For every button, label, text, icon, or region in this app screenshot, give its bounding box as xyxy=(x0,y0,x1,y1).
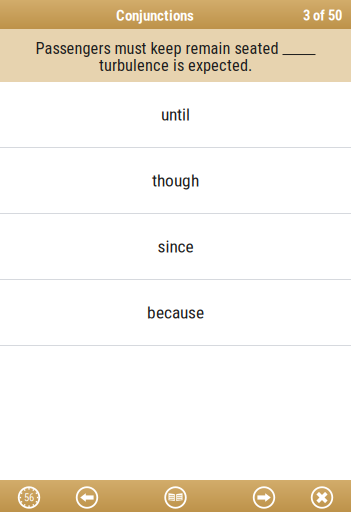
staticText: 3 of 50 xyxy=(303,7,342,24)
staticText: Conjunctions xyxy=(116,7,194,24)
button[interactable]: though xyxy=(0,148,351,213)
staticText: turbulence is expected. xyxy=(99,56,252,75)
staticText: until xyxy=(161,104,190,125)
staticText: though xyxy=(152,170,199,191)
button[interactable]: because xyxy=(0,280,351,345)
button[interactable]: Close quiz xyxy=(309,484,335,510)
button[interactable]: Next question xyxy=(251,484,277,510)
button[interactable]: Previous question xyxy=(74,484,100,510)
button[interactable]: until xyxy=(0,82,351,147)
staticText: because xyxy=(147,302,204,323)
staticText: since xyxy=(157,236,193,257)
button[interactable]: Dictionary xyxy=(162,484,188,510)
staticText: 56 xyxy=(24,491,34,504)
staticText: Passengers must keep remain seated xyxy=(35,39,278,58)
button[interactable]: Time remaining xyxy=(16,484,42,510)
button[interactable]: since xyxy=(0,214,351,279)
